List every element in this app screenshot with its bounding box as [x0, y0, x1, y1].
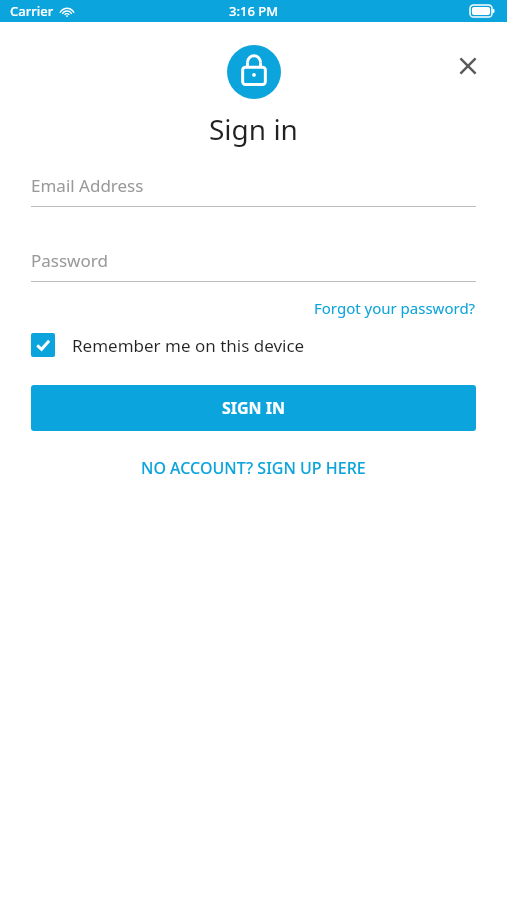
staticText: Email Address [31, 174, 144, 197]
staticText: Sign in [209, 110, 298, 148]
button[interactable]: Close [448, 46, 488, 86]
staticText: Carrier [10, 2, 54, 20]
staticText: Forgot your password? [314, 298, 476, 318]
button[interactable]: Password [31, 245, 476, 282]
staticText: NO ACCOUNT? SIGN UP HERE [141, 457, 366, 479]
staticText: SIGN IN [222, 397, 286, 419]
staticText: 3:16 PM [229, 2, 279, 20]
staticText: Password [31, 249, 108, 272]
button[interactable]: NO ACCOUNT? SIGN UP HERE [129, 453, 378, 483]
button[interactable]: Remember me on this device [31, 330, 305, 360]
button[interactable]: SIGN IN [31, 385, 476, 431]
button[interactable]: Email Address [31, 170, 476, 207]
button[interactable]: Forgot your password? [314, 296, 476, 320]
staticText: Remember me on this device [72, 334, 305, 357]
